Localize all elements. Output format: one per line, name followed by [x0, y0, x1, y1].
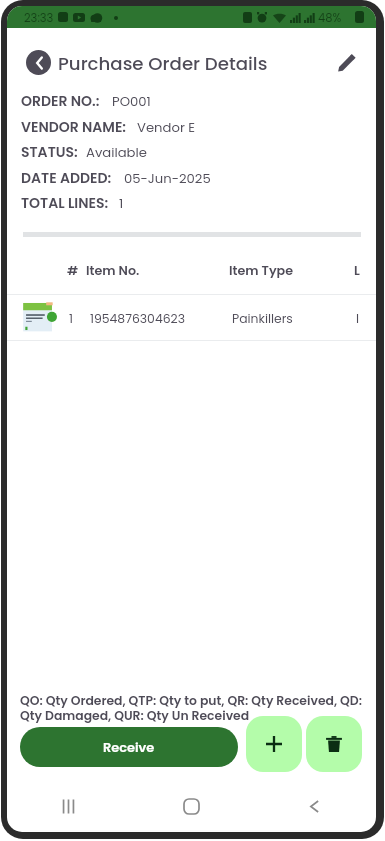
staticText: 1: [119, 194, 124, 212]
staticText: QO: Qty Ordered, QTP: Qty to put, QR: Qt…: [20, 692, 362, 709]
staticText: L: [354, 262, 360, 280]
staticText: 1954876304623: [90, 310, 185, 327]
staticText: Item No.: [86, 262, 140, 280]
button[interactable]: Add: [246, 716, 302, 772]
staticText: Available: [86, 143, 147, 161]
staticText: Vendor E: [137, 118, 196, 136]
staticText: VENDOR NAME:: [21, 117, 127, 137]
button[interactable]: Recents: [7, 786, 130, 826]
staticText: 05-Jun-2025: [124, 169, 211, 187]
button[interactable]: Receive: [20, 727, 238, 767]
button[interactable]: Delete: [306, 716, 362, 772]
staticText: 48%: [318, 10, 342, 26]
button[interactable]: Home: [130, 786, 253, 826]
staticText: ORDER NO.:: [21, 91, 100, 111]
staticText: STATUS:: [21, 142, 78, 162]
staticText: Qty Damaged, QUR: Qty Un Received: [20, 707, 250, 724]
button[interactable]: Back: [253, 786, 376, 826]
staticText: 23:33: [24, 10, 54, 26]
staticText: DATE ADDED:: [21, 168, 112, 188]
staticText: TOTAL LINES:: [21, 193, 109, 213]
button[interactable]: Edit: [333, 49, 359, 75]
staticText: Item Type: [229, 262, 294, 280]
staticText: I: [356, 310, 360, 327]
staticText: Purchase Order Details: [58, 51, 268, 76]
staticText: Painkillers: [232, 310, 293, 327]
staticText: 1: [69, 310, 73, 327]
staticText: PO001: [112, 92, 151, 110]
staticText: #: [67, 262, 79, 280]
button[interactable]: Back: [26, 50, 51, 75]
staticText: Receive: [103, 738, 155, 756]
